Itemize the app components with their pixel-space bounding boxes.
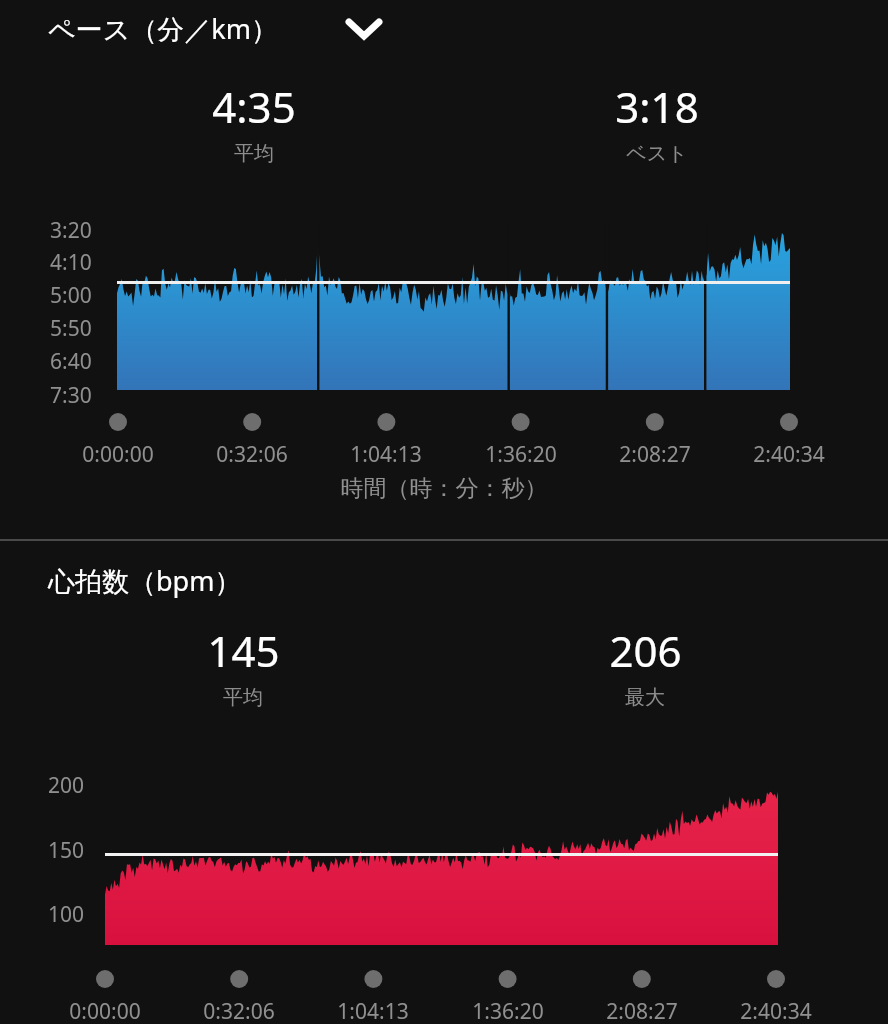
staticText: 5:00: [50, 281, 92, 310]
staticText: ベスト: [626, 141, 688, 166]
staticText: 1:36:20: [321, 440, 721, 469]
staticText: 1:36:20: [308, 997, 708, 1024]
button[interactable]: Expand pace metric: [340, 4, 388, 52]
staticText: 最大: [625, 685, 665, 710]
staticText: 206: [609, 622, 682, 679]
staticText: ペース（分／km）: [48, 10, 278, 47]
staticText: 2:40:34: [576, 997, 888, 1024]
staticText: 0:32:06: [52, 440, 452, 469]
staticText: 150: [48, 836, 85, 865]
staticText: 平均: [223, 685, 263, 710]
button[interactable]: 206: [505, 622, 785, 714]
staticText: 平均: [234, 141, 274, 166]
staticText: 200: [48, 771, 85, 800]
staticText: 0:00:00: [0, 997, 305, 1024]
staticText: 3:18: [615, 78, 699, 135]
staticText: 5:50: [50, 314, 92, 343]
staticText: 0:00:00: [0, 440, 318, 469]
staticText: 145: [207, 622, 280, 679]
button[interactable]: 4:35: [114, 78, 394, 170]
button[interactable]: 3:18: [517, 78, 797, 170]
staticText: 3:20: [50, 216, 92, 245]
staticText: 7:30: [50, 381, 92, 410]
button[interactable]: 心拍数（bpm）: [40, 556, 242, 604]
staticText: 2:08:27: [442, 997, 842, 1024]
staticText: 1:04:13: [173, 997, 573, 1024]
button[interactable]: ペース（分／km）: [40, 4, 278, 52]
staticText: 時間（時：分：秒）: [244, 474, 644, 503]
staticText: 6:40: [50, 347, 92, 376]
staticText: 2:08:27: [455, 440, 855, 469]
staticText: 0:32:06: [39, 997, 439, 1024]
button[interactable]: 145: [103, 622, 383, 714]
staticText: 4:10: [50, 248, 92, 277]
staticText: 100: [48, 900, 85, 929]
staticText: 2:40:34: [589, 440, 888, 469]
staticText: 1:04:13: [186, 440, 586, 469]
staticText: 4:35: [212, 78, 296, 135]
staticText: 心拍数（bpm）: [48, 562, 242, 599]
